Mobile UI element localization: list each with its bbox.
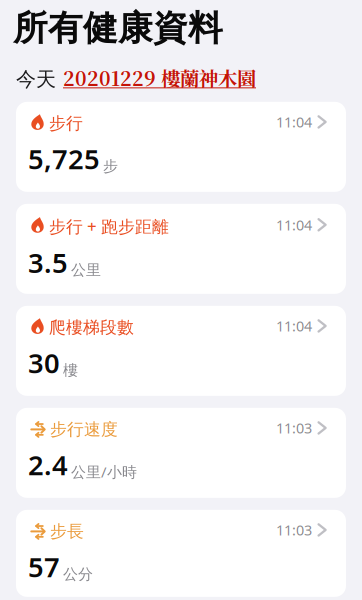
staticText: 11:04 [276, 112, 312, 132]
staticText: 5,725 [28, 140, 100, 177]
button[interactable]: 步行速度 [16, 408, 346, 498]
staticText: 爬樓梯段數 [49, 317, 134, 338]
staticText: 步行 [49, 113, 83, 134]
staticText: 樓 [63, 361, 78, 380]
staticText: 11:03 [276, 520, 312, 540]
staticText: 公里 [71, 261, 101, 279]
button[interactable]: 步長 [16, 510, 346, 597]
button[interactable]: 步行 + 跑步距離 [16, 204, 346, 294]
staticText: 步 [103, 157, 118, 176]
staticText: 步行速度 [50, 419, 118, 440]
staticText: 20201229 樓蘭神木園 [63, 63, 256, 91]
staticText: 公里/小時 [71, 461, 137, 482]
staticText: 步行 + 跑步距離 [49, 215, 169, 238]
staticText: 11:04 [276, 215, 312, 235]
staticText: 公分 [63, 565, 93, 584]
staticText: 今天 [16, 67, 56, 92]
button[interactable]: 爬樓梯段數 [16, 306, 346, 396]
button[interactable]: 步行 [16, 102, 346, 192]
staticText: 11:03 [276, 418, 312, 438]
staticText: 步長 [50, 521, 84, 542]
staticText: 11:04 [276, 316, 312, 336]
staticText: 57 [28, 548, 60, 585]
staticText: 3.5 [28, 244, 68, 281]
staticText: 2.4 [28, 446, 68, 483]
staticText: 30 [28, 344, 60, 381]
staticText: 所有健康資料 [13, 6, 223, 50]
